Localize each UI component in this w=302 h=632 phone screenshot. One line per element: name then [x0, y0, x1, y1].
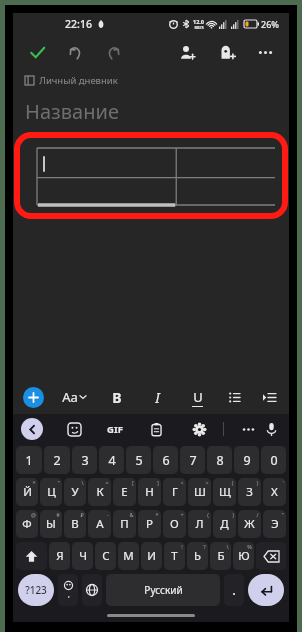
staticText: ": [57, 479, 60, 486]
button[interactable]: 1: [16, 446, 42, 474]
button[interactable]: More options: [253, 40, 277, 64]
button[interactable]: Aa: [62, 388, 86, 406]
staticText: -: [107, 511, 109, 518]
button[interactable]: Р: [138, 510, 161, 538]
staticText: ": [281, 511, 284, 518]
staticText: >: [205, 479, 209, 486]
button[interactable]: Undo: [63, 40, 87, 64]
staticText: GIF: [107, 423, 123, 436]
staticText: Русский: [144, 583, 183, 597]
staticText: 0: [270, 452, 278, 469]
button[interactable]: Shift: [16, 542, 47, 570]
staticText: Я: [56, 548, 64, 564]
button[interactable]: Indent: [260, 386, 279, 408]
button[interactable]: Ж: [238, 510, 261, 538]
button[interactable]: Backspace: [256, 542, 286, 570]
button[interactable]: И: [141, 542, 162, 570]
staticText: Ы: [46, 516, 56, 532]
button[interactable]: Личный дневник: [25, 69, 277, 91]
button[interactable]: .: [224, 574, 244, 606]
button[interactable]: Название: [25, 91, 277, 131]
button[interactable]: Х: [263, 478, 286, 506]
button[interactable]: В: [64, 510, 86, 538]
button[interactable]: 5: [126, 446, 151, 474]
staticText: 2: [53, 452, 61, 469]
button[interactable]: Redo: [101, 40, 125, 64]
button[interactable]: U: [186, 386, 208, 408]
button[interactable]: Щ: [213, 478, 236, 506]
button[interactable]: А: [88, 510, 111, 538]
button[interactable]: Bulleted list: [224, 386, 246, 408]
button[interactable]: Т: [164, 542, 185, 570]
button[interactable]: У: [64, 478, 86, 506]
staticText: Ф: [22, 516, 32, 532]
button[interactable]: I: [146, 386, 168, 408]
staticText: ₽: [80, 511, 84, 518]
staticText: З: [246, 484, 253, 500]
button[interactable]: Э: [263, 510, 286, 538]
staticText: Г: [172, 484, 178, 500]
staticText: Э: [271, 516, 279, 532]
button[interactable]: Voice input: [261, 419, 281, 439]
button[interactable]: 2: [44, 446, 70, 474]
staticText: 4: [108, 452, 116, 469]
staticText: П: [120, 516, 129, 532]
button[interactable]: Ф: [16, 510, 38, 538]
button[interactable]: Й: [16, 478, 38, 506]
button[interactable]: Back: [21, 418, 43, 440]
button[interactable]: More: [238, 419, 258, 439]
button[interactable]: Ц: [40, 478, 62, 506]
button[interactable]: О: [163, 510, 186, 538]
button[interactable]: Ь: [187, 542, 208, 570]
button[interactable]: Insert: [23, 387, 44, 408]
button[interactable]: Л: [188, 510, 211, 538]
button[interactable]: С: [95, 542, 116, 570]
button[interactable]: 6: [153, 446, 178, 474]
button[interactable]: Emoji: [58, 574, 78, 606]
button[interactable]: 4: [99, 446, 124, 474]
staticText: Ч: [79, 548, 87, 564]
button[interactable]: Русский: [106, 574, 220, 606]
button[interactable]: 8: [207, 446, 232, 474]
button[interactable]: Е: [113, 478, 136, 506]
button[interactable]: Б: [210, 542, 231, 570]
button[interactable]: GIF: [107, 423, 123, 436]
button[interactable]: Ю: [233, 542, 254, 570]
button[interactable]: М: [118, 542, 139, 570]
button[interactable]: 3: [72, 446, 97, 474]
staticText: U: [193, 388, 203, 406]
button[interactable]: З: [238, 478, 261, 506]
button[interactable]: Stickers: [64, 419, 84, 439]
button[interactable]: Я: [49, 542, 70, 570]
button[interactable]: Enter: [248, 574, 284, 606]
button[interactable]: Ч: [72, 542, 93, 570]
button[interactable]: Settings: [189, 419, 209, 439]
button[interactable]: Change language: [82, 574, 102, 606]
button[interactable]: К: [88, 478, 111, 506]
button[interactable]: Done: [25, 40, 49, 64]
button[interactable]: Ы: [40, 510, 62, 538]
button[interactable]: ?123: [18, 574, 54, 606]
staticText: \: [81, 479, 84, 486]
button[interactable]: П: [113, 510, 136, 538]
button[interactable]: Add lock: [215, 40, 239, 64]
staticText: Р: [146, 516, 153, 532]
staticText: 26%: [261, 18, 279, 30]
staticText: ': [282, 479, 284, 486]
staticText: !: [181, 543, 183, 550]
button[interactable]: Clipboard: [146, 419, 166, 439]
button[interactable]: 9: [234, 446, 259, 474]
staticText: &: [129, 511, 134, 518]
staticText: 22:16: [65, 17, 92, 31]
button[interactable]: B: [106, 386, 128, 408]
button[interactable]: Г: [163, 478, 186, 506]
staticText: I: [155, 388, 160, 407]
button[interactable]: 0: [261, 446, 286, 474]
staticText: Т: [171, 548, 178, 564]
staticText: 8: [216, 452, 224, 469]
button[interactable]: Д: [213, 510, 236, 538]
button[interactable]: Н: [138, 478, 161, 506]
button[interactable]: 7: [180, 446, 205, 474]
button[interactable]: Add person: [175, 40, 199, 64]
button[interactable]: Ш: [188, 478, 211, 506]
